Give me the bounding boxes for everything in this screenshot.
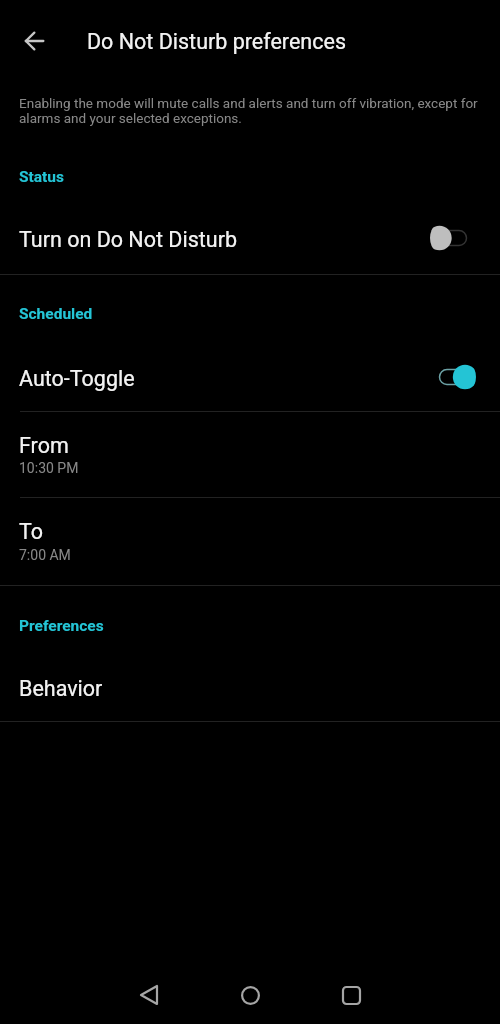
staticText: From (19, 433, 69, 458)
staticText: Turn on Do Not Disturb (19, 227, 237, 252)
staticText: Behavior (19, 676, 103, 701)
button[interactable]: Recent apps (331, 975, 371, 1015)
staticText: Enabling the mode will mute calls and al… (19, 95, 485, 127)
button[interactable]: To (0, 498, 500, 585)
staticText: Scheduled (19, 305, 93, 323)
button[interactable]: Navigate up (12, 19, 56, 63)
staticText: 10:30 PM (19, 460, 79, 476)
staticText: Do Not Disturb preferences (87, 29, 346, 54)
button[interactable]: Auto-Toggle (0, 342, 500, 411)
staticText: To (19, 519, 44, 544)
staticText: Preferences (19, 617, 104, 635)
button[interactable]: Turn on Do Not Disturb (0, 204, 500, 274)
button[interactable]: Behavior (0, 653, 500, 721)
staticText: Status (19, 168, 64, 186)
staticText: 7:00 AM (19, 547, 71, 563)
staticText: Auto-Toggle (19, 366, 135, 391)
button[interactable]: From (0, 412, 500, 497)
button[interactable]: Home (230, 975, 270, 1015)
button[interactable]: Back (128, 975, 170, 1015)
button[interactable]: Turn on Do Not Disturb, off (430, 218, 476, 258)
button[interactable]: Auto-Toggle, on (430, 357, 476, 397)
